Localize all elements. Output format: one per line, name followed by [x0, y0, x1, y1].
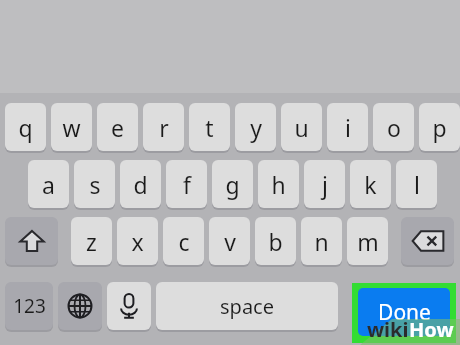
staticText: g [225, 169, 240, 200]
button[interactable]: 123 [5, 282, 53, 332]
staticText: space [220, 293, 274, 320]
staticText: p [432, 112, 447, 143]
staticText: e [111, 112, 124, 143]
staticText: x [131, 226, 144, 257]
button[interactable]: p [419, 103, 460, 153]
staticText: w [62, 112, 81, 143]
button[interactable]: f [166, 160, 207, 210]
staticText: f [183, 169, 191, 200]
staticText: d [133, 169, 148, 200]
staticText: j [322, 169, 328, 200]
button[interactable]: b [255, 217, 296, 267]
button[interactable]: h [258, 160, 299, 210]
staticText: k [364, 169, 377, 200]
button[interactable]: v [209, 217, 250, 267]
staticText: How [409, 316, 454, 343]
button[interactable]: n [301, 217, 342, 267]
staticText: u [294, 112, 309, 143]
button[interactable]: x [117, 217, 158, 267]
button[interactable]: Backspace [401, 217, 454, 267]
button[interactable]: s [74, 160, 115, 210]
staticText: s [89, 169, 101, 200]
staticText: q [18, 112, 33, 143]
staticText: z [86, 226, 97, 257]
button[interactable]: Dictation [107, 282, 151, 332]
button[interactable]: z [71, 217, 112, 267]
button[interactable]: Shift [5, 217, 58, 267]
button[interactable]: space [156, 282, 338, 332]
staticText: b [268, 226, 283, 257]
button[interactable]: m [347, 217, 388, 267]
button[interactable]: o [373, 103, 414, 153]
staticText: l [414, 169, 420, 200]
staticText: wiki [367, 316, 409, 343]
staticText: h [271, 169, 286, 200]
button[interactable]: u [281, 103, 322, 153]
staticText: t [205, 112, 214, 143]
staticText: c [178, 226, 190, 257]
button[interactable]: Change keyboard [58, 282, 102, 332]
button[interactable]: e [97, 103, 138, 153]
button[interactable]: t [189, 103, 230, 153]
button[interactable]: Done [352, 283, 456, 343]
button[interactable]: l [396, 160, 437, 210]
button[interactable]: c [163, 217, 204, 267]
staticText: i [345, 112, 351, 143]
staticText: m [357, 226, 379, 257]
staticText: o [387, 112, 401, 143]
button[interactable]: d [120, 160, 161, 210]
staticText: y [250, 112, 262, 143]
staticText: Done [378, 298, 431, 327]
button[interactable]: y [235, 103, 276, 153]
button[interactable]: g [212, 160, 253, 210]
staticText: a [42, 169, 55, 200]
staticText: v [224, 226, 236, 257]
button[interactable]: a [28, 160, 69, 210]
button[interactable]: r [143, 103, 184, 153]
button[interactable]: i [327, 103, 368, 153]
button[interactable]: w [51, 103, 92, 153]
staticText: n [314, 226, 329, 257]
staticText: 123 [13, 293, 46, 319]
button[interactable]: q [5, 103, 46, 153]
staticText: r [159, 112, 169, 143]
button[interactable]: k [350, 160, 391, 210]
button[interactable]: j [304, 160, 345, 210]
